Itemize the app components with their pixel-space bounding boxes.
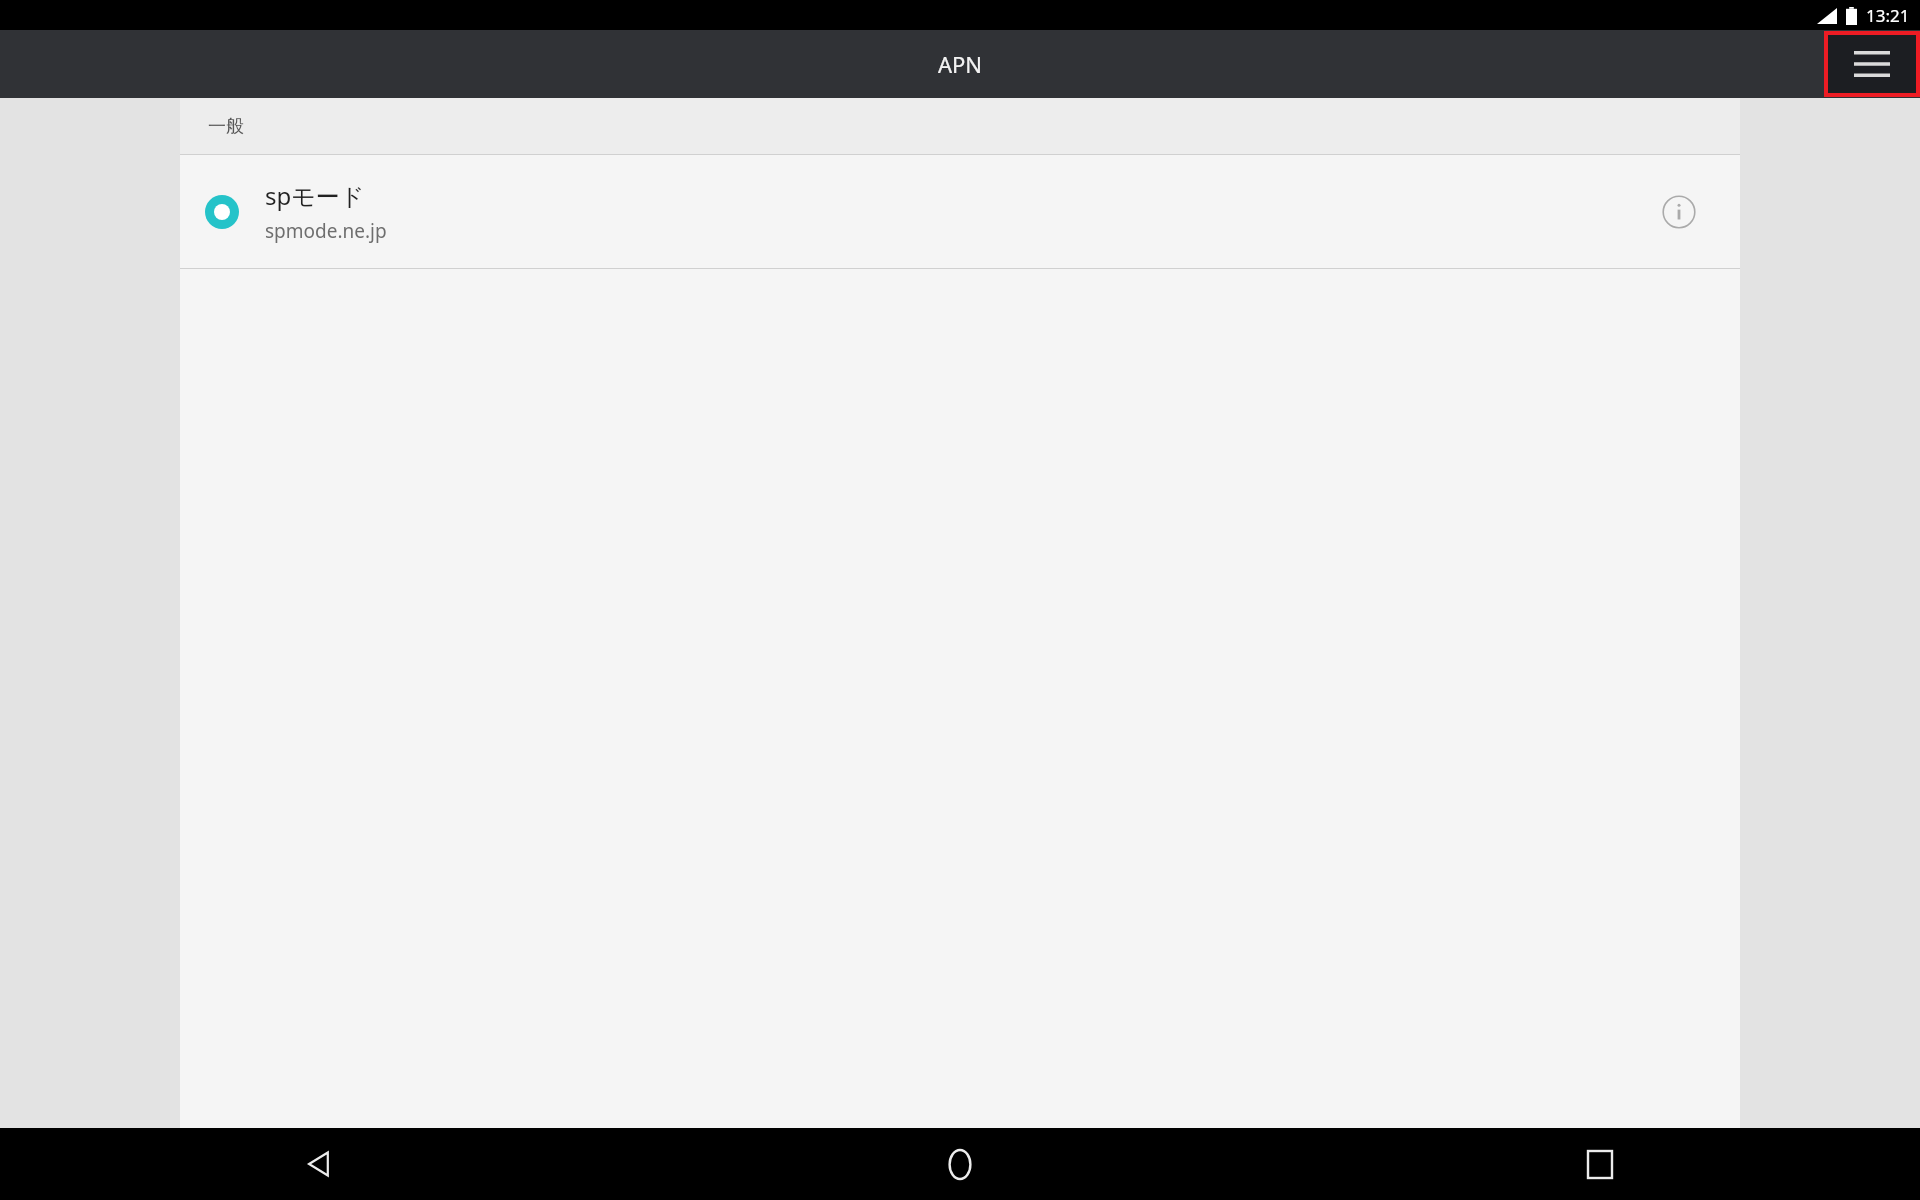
staticText: spモード <box>265 179 365 212</box>
staticText: APN <box>938 49 983 79</box>
button[interactable]: Home <box>640 1128 1280 1200</box>
button[interactable]: Menu <box>1828 35 1916 93</box>
staticText: 13:21 <box>1866 4 1910 27</box>
button[interactable]: spモード <box>180 155 1740 268</box>
button[interactable]: Details <box>1640 173 1718 251</box>
staticText: spmode.ne.jp <box>265 218 387 244</box>
staticText: 一般 <box>208 115 244 138</box>
button[interactable]: Back <box>0 1128 640 1200</box>
button[interactable]: Recent apps <box>1280 1128 1920 1200</box>
